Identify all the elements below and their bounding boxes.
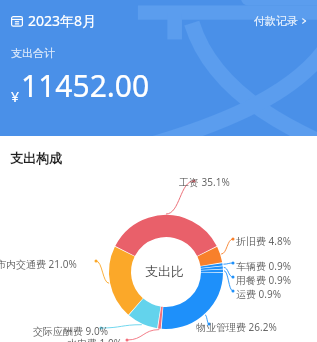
other: 选择月份 <box>11 15 23 27</box>
button[interactable]: 选择月份 <box>11 11 97 30</box>
staticText: 交际应酬费 9.0% <box>33 324 109 338</box>
staticText: 支出构成 <box>10 150 62 166</box>
staticText: 支出合计 <box>11 46 55 60</box>
staticText: 工资 35.1% <box>179 175 230 189</box>
staticText: 2023年8月 <box>28 11 97 30</box>
staticText: ¥ <box>11 87 20 106</box>
staticText: 物业管理费 26.2% <box>196 320 277 334</box>
staticText: 支出比 <box>145 263 184 279</box>
staticText: 运费 0.9% <box>236 287 282 301</box>
staticText: 车辆费 0.9% <box>236 259 292 273</box>
staticText: 付款记录 <box>254 14 298 28</box>
button[interactable] <box>0 0 317 342</box>
staticText: 用餐费 0.9% <box>236 273 292 287</box>
staticText: 11452.00 <box>21 65 150 106</box>
staticText: 水电费 1.0% <box>67 336 123 342</box>
button[interactable]: 付款记录 <box>254 14 308 28</box>
staticText: 折旧费 4.8% <box>236 234 292 248</box>
staticText: 市内交通费 21.0% <box>0 257 77 271</box>
